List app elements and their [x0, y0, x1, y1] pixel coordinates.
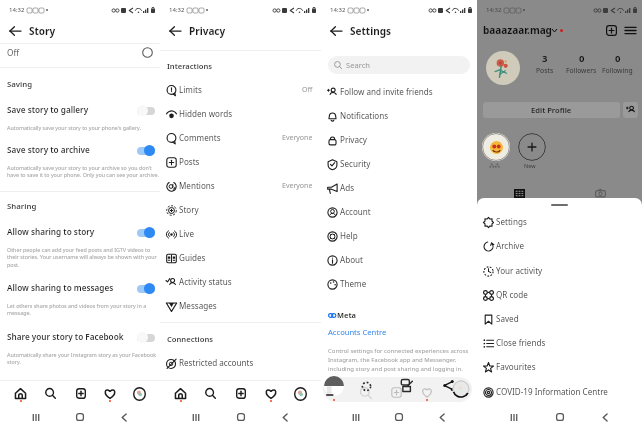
button[interactable]: Home: [233, 409, 249, 425]
button[interactable]: [321, 176, 477, 200]
button[interactable]: Edit Profile: [483, 102, 620, 118]
button[interactable]: Grid: [514, 189, 525, 198]
button[interactable]: Profile: [130, 384, 149, 403]
button[interactable]: [160, 198, 321, 222]
staticText: Hidden words: [179, 108, 233, 119]
button[interactable]: [321, 224, 477, 248]
button[interactable]: Search: [41, 384, 60, 403]
staticText: Settings: [350, 24, 391, 38]
button[interactable]: [477, 234, 642, 258]
staticText: COVID-19 Information Centre: [496, 386, 608, 397]
button[interactable]: Back: [326, 21, 346, 41]
button[interactable]: Toggle: [137, 105, 155, 116]
staticText: Let others share photos and videos from …: [7, 302, 163, 317]
button[interactable]: Back: [597, 409, 613, 425]
staticText: Activity status: [179, 276, 232, 287]
button[interactable]: [477, 259, 642, 283]
button[interactable]: Search: [201, 384, 220, 403]
button[interactable]: Back: [5, 21, 25, 41]
button[interactable]: [321, 104, 477, 128]
button[interactable]: [0, 326, 160, 360]
button[interactable]: [160, 246, 321, 270]
staticText: 3: [542, 52, 548, 65]
button[interactable]: [321, 80, 477, 104]
button[interactable]: [0, 221, 160, 255]
button[interactable]: Search: [328, 56, 470, 74]
button[interactable]: Create: [391, 387, 402, 398]
button[interactable]: New post: [604, 23, 618, 37]
button[interactable]: [0, 139, 160, 173]
staticText: Notifications: [340, 110, 389, 121]
button[interactable]: [321, 128, 477, 152]
button[interactable]: Reels: [400, 379, 413, 392]
button[interactable]: [160, 150, 321, 174]
button[interactable]: [0, 277, 160, 311]
staticText: Everyone: [282, 181, 313, 191]
button[interactable]: [477, 210, 642, 234]
button[interactable]: Home: [72, 409, 88, 425]
button[interactable]: [321, 323, 477, 341]
staticText: Automatically save your story to your ar…: [7, 164, 163, 179]
button[interactable]: New story: [518, 133, 546, 161]
staticText: Following: [602, 66, 633, 75]
button[interactable]: [160, 270, 321, 294]
button[interactable]: [160, 222, 321, 246]
button[interactable]: [477, 283, 642, 307]
button[interactable]: Create: [231, 384, 250, 403]
button[interactable]: [160, 294, 321, 318]
button[interactable]: Activity: [261, 384, 280, 403]
button[interactable]: Activity: [100, 384, 119, 403]
staticText: Account: [340, 206, 371, 217]
button[interactable]: Home: [11, 384, 30, 403]
button[interactable]: Toggle: [137, 332, 155, 343]
staticText: Followers: [566, 66, 597, 75]
staticText: 14:32: [9, 6, 25, 14]
button[interactable]: Home: [552, 409, 568, 425]
button[interactable]: Home: [171, 384, 190, 403]
button[interactable]: [160, 78, 321, 102]
button[interactable]: Share: [443, 380, 454, 391]
staticText: Automatically share your Instagram story…: [7, 351, 163, 366]
button[interactable]: Toggle: [137, 227, 155, 238]
button[interactable]: Menu: [623, 23, 637, 37]
button[interactable]: Tagged: [595, 189, 606, 198]
staticText: Saved: [496, 313, 519, 324]
button[interactable]: Home: [391, 409, 407, 425]
button[interactable]: [0, 44, 160, 67]
button[interactable]: [477, 331, 642, 355]
button[interactable]: [321, 152, 477, 176]
button[interactable]: Back: [116, 409, 132, 425]
button[interactable]: [321, 272, 477, 296]
button[interactable]: Back: [434, 409, 450, 425]
button[interactable]: Activity: [421, 386, 433, 398]
button[interactable]: [321, 248, 477, 272]
button[interactable]: [160, 126, 321, 150]
button[interactable]: Create: [71, 384, 90, 403]
staticText: Posts: [536, 66, 554, 75]
button[interactable]: [321, 200, 477, 224]
button[interactable]: [477, 355, 642, 379]
button[interactable]: Profile: [291, 384, 310, 403]
button[interactable]: Profile: [452, 380, 470, 398]
button[interactable]: Recents: [28, 409, 44, 425]
button[interactable]: Back: [277, 409, 293, 425]
button[interactable]: [477, 380, 642, 404]
button[interactable]: [160, 351, 321, 375]
button[interactable]: Back: [165, 21, 185, 41]
button[interactable]: Story: [361, 381, 372, 392]
button[interactable]: Home: [324, 376, 344, 396]
button[interactable]: Toggle: [137, 283, 155, 294]
button[interactable]: [0, 99, 160, 133]
staticText: Live: [179, 228, 195, 239]
button[interactable]: [160, 174, 321, 198]
button[interactable]: Recents: [506, 409, 522, 425]
button[interactable]: [477, 307, 642, 331]
staticText: Archive: [496, 240, 525, 251]
button[interactable]: Toggle: [137, 145, 155, 156]
staticText: About: [340, 254, 363, 265]
button[interactable]: [160, 102, 321, 126]
button[interactable]: Discover people: [623, 102, 638, 118]
button[interactable]: Recents: [188, 409, 204, 425]
button[interactable]: Recents: [348, 409, 364, 425]
staticText: baaazaar.mag: [483, 23, 552, 37]
